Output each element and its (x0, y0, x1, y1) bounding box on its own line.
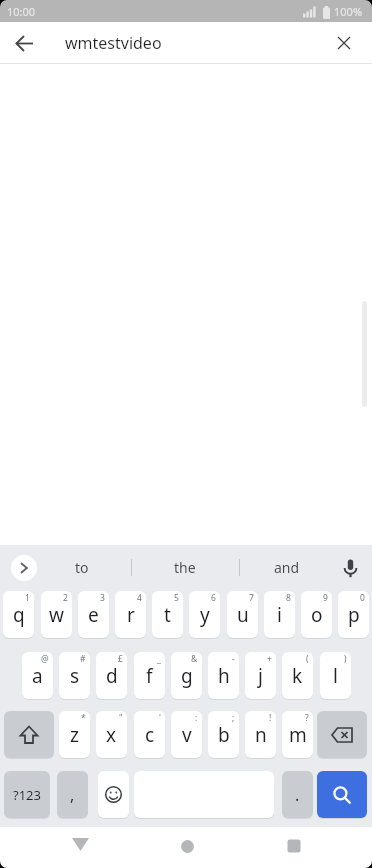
button[interactable]: to (37, 545, 127, 590)
button[interactable]: g (171, 652, 202, 699)
staticText: 3 (100, 592, 105, 604)
staticText: and (274, 558, 300, 577)
staticText: y (200, 602, 210, 628)
staticText: w (49, 602, 64, 628)
staticText: 2 (63, 592, 68, 604)
button[interactable]: j (245, 652, 276, 699)
button[interactable]: y (189, 591, 220, 638)
button[interactable]: o (301, 591, 332, 638)
staticText: £ (118, 653, 123, 665)
button[interactable]: t (152, 591, 183, 638)
staticText: ) (344, 653, 347, 665)
button[interactable]: s (59, 652, 90, 699)
staticText: e (88, 602, 99, 628)
staticText: ! (269, 712, 272, 724)
staticText: 10:00 (7, 4, 36, 19)
button[interactable]: x (96, 711, 127, 758)
button[interactable]: k (282, 652, 313, 699)
staticText: : (195, 712, 198, 724)
staticText: u (237, 602, 249, 628)
staticText: r (127, 602, 135, 628)
button[interactable] (169, 830, 205, 862)
staticText: , (70, 784, 75, 806)
staticText: p (348, 602, 360, 628)
staticText: * (81, 712, 86, 724)
staticText: l (333, 663, 338, 689)
button[interactable]: b (208, 711, 239, 758)
staticText: z (70, 722, 79, 748)
staticText: x (106, 722, 117, 748)
staticText: n (255, 722, 267, 748)
button[interactable]: u (227, 591, 258, 638)
staticText: t (164, 602, 171, 628)
button[interactable] (329, 28, 359, 58)
staticText: 6 (211, 592, 216, 604)
staticText: wmtestvideo (65, 32, 162, 54)
staticText: 0 (360, 592, 365, 604)
button[interactable] (276, 830, 312, 862)
button[interactable]: , (57, 771, 88, 818)
button[interactable]: f (134, 652, 165, 699)
button[interactable]: m (282, 711, 313, 758)
staticText: k (292, 663, 303, 689)
button[interactable] (8, 27, 40, 59)
staticText: @ (41, 653, 49, 665)
staticText: 5 (174, 592, 179, 604)
button[interactable] (4, 711, 54, 758)
button[interactable]: q (3, 591, 34, 638)
button[interactable] (317, 771, 367, 818)
staticText: c (145, 722, 155, 748)
staticText: ( (306, 653, 309, 665)
staticText: to (75, 558, 89, 577)
button[interactable]: c (134, 711, 165, 758)
button[interactable]: the (140, 545, 230, 590)
staticText: _ (157, 653, 161, 665)
staticText: # (80, 653, 86, 665)
button[interactable]: d (96, 652, 127, 699)
staticText: d (106, 663, 118, 689)
button[interactable] (98, 771, 129, 818)
staticText: - (232, 653, 235, 665)
staticText: 8 (286, 592, 291, 604)
staticText: ?123 (13, 786, 41, 804)
button[interactable]: and (242, 545, 332, 590)
button[interactable]: n (245, 711, 276, 758)
button[interactable]: z (59, 711, 90, 758)
staticText: + (267, 653, 272, 665)
button[interactable]: w (41, 591, 72, 638)
staticText: q (13, 602, 25, 628)
button[interactable]: . (282, 771, 313, 818)
button[interactable]: p (338, 591, 369, 638)
button[interactable]: r (115, 591, 146, 638)
staticText: the (174, 558, 196, 577)
staticText: ' (159, 712, 161, 724)
button[interactable] (336, 554, 364, 582)
staticText: f (146, 663, 153, 689)
staticText: 4 (137, 592, 142, 604)
staticText: o (311, 602, 323, 628)
staticText: h (218, 663, 230, 689)
staticText: m (289, 722, 307, 748)
staticText: 7 (249, 592, 254, 604)
staticText: . (295, 784, 300, 806)
staticText: s (70, 663, 80, 689)
staticText: " (119, 712, 123, 724)
staticText: g (181, 663, 193, 689)
button[interactable] (11, 555, 37, 581)
staticText: b (218, 722, 230, 748)
button[interactable] (62, 828, 98, 860)
button[interactable]: h (208, 652, 239, 699)
staticText: 9 (323, 592, 328, 604)
button[interactable]: a (22, 652, 53, 699)
button[interactable]: v (171, 711, 202, 758)
staticText: ? (305, 712, 309, 724)
button[interactable]: i (264, 591, 295, 638)
button[interactable] (317, 711, 367, 758)
staticText: a (32, 663, 43, 689)
button[interactable]: e (78, 591, 109, 638)
staticText: & (191, 653, 198, 665)
button[interactable]: l (320, 652, 351, 699)
button[interactable]: ?123 (4, 771, 50, 818)
staticText: v (182, 722, 192, 748)
